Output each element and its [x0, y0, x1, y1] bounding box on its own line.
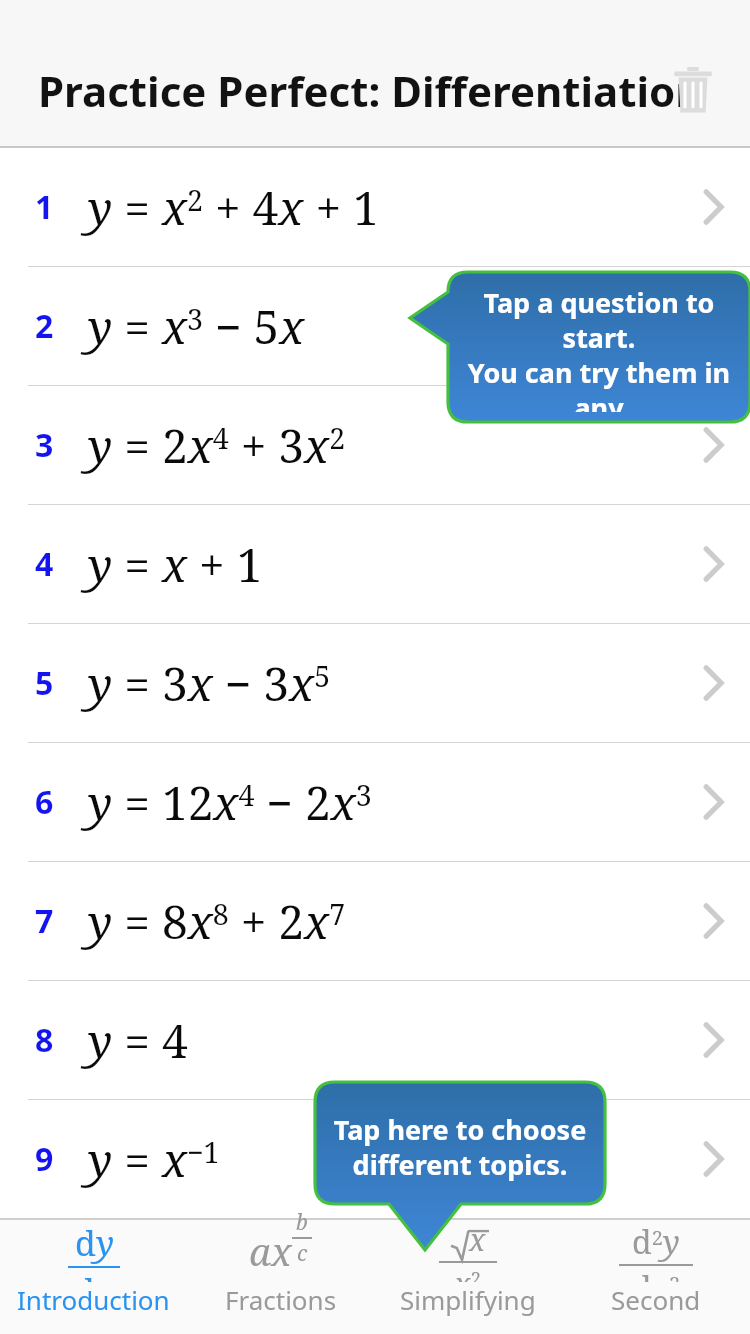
button[interactable]: 9 — [0, 1100, 750, 1218]
staticText: y = 4 — [88, 1009, 676, 1072]
button[interactable]: x — [374, 1220, 562, 1317]
staticText: y = 8x8 + 2x7 — [88, 890, 676, 953]
staticText: c — [297, 1239, 308, 1268]
staticText: Second — [611, 1282, 701, 1317]
button[interactable]: 2 — [0, 267, 750, 385]
staticText: 3 — [35, 423, 54, 467]
button[interactable]: 4 — [0, 505, 750, 623]
staticText: 6 — [35, 780, 54, 824]
button[interactable]: 6 — [0, 743, 750, 861]
staticText: dy — [75, 1220, 114, 1266]
staticText: 1 — [35, 185, 54, 229]
staticText: y = x2 + 4x + 1 — [88, 176, 676, 239]
staticText: x — [469, 1219, 486, 1260]
staticText: y = 2x4 + 3x2 — [88, 414, 676, 477]
staticText: 9 — [35, 1137, 54, 1181]
button[interactable]: 1 — [0, 148, 750, 266]
staticText: 8 — [35, 1018, 54, 1062]
staticText: b — [296, 1208, 308, 1237]
button[interactable]: 3 — [0, 386, 750, 504]
button[interactable]: 7 — [0, 862, 750, 980]
staticText: 4 — [35, 542, 54, 586]
staticText: Fractions — [225, 1282, 337, 1317]
button[interactable]: 5 — [0, 624, 750, 742]
staticText: d2y — [632, 1220, 680, 1264]
staticText: y = 12x4 − 2x3 — [88, 771, 676, 834]
button[interactable]: 8 — [0, 981, 750, 1099]
staticText: Practice Perfect: Differentiation — [38, 62, 703, 119]
button[interactable]: Delete — [662, 59, 724, 121]
staticText: Introduction — [17, 1282, 170, 1317]
button[interactable]: d2y — [562, 1220, 750, 1317]
staticText: 7 — [35, 899, 54, 943]
staticText: Tap a question to start. You can try the… — [462, 284, 736, 412]
button[interactable]: dy — [0, 1220, 187, 1317]
button[interactable]: ax — [187, 1220, 374, 1317]
staticText: Tap here to choose different topics. — [329, 1111, 591, 1182]
staticText: x2 — [454, 1263, 482, 1282]
staticText: Simplifying — [400, 1282, 536, 1317]
staticText: dx — [74, 1268, 114, 1282]
staticText: y = x−1 — [88, 1128, 676, 1191]
staticText: y = x + 1 — [88, 533, 676, 596]
staticText: ax — [249, 1225, 292, 1277]
staticText: 2 — [35, 304, 54, 348]
staticText: y = 3x − 3x5 — [88, 652, 676, 715]
staticText: y = x3 − 5x — [88, 295, 676, 358]
staticText: 5 — [35, 661, 54, 705]
staticText: dx2 — [632, 1266, 681, 1282]
